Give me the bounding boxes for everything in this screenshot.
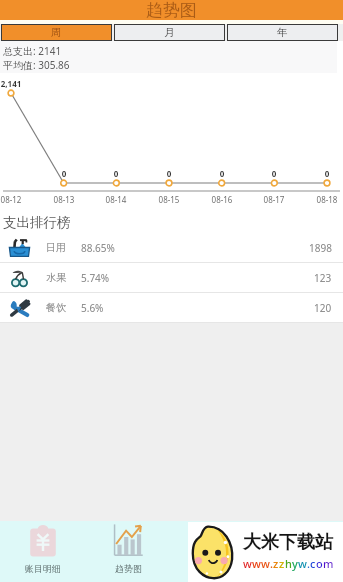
staticText: z <box>279 556 285 571</box>
staticText: 1898 <box>309 241 332 255</box>
staticText: m <box>323 556 334 571</box>
staticText: 0 <box>254 168 294 179</box>
staticText: 5.74% <box>81 271 110 285</box>
staticText: 120 <box>314 301 332 315</box>
staticText: 08-18 <box>307 194 343 205</box>
staticText: 支出排行榜 <box>3 214 71 231</box>
staticText: 周 <box>51 26 62 39</box>
staticText: o <box>316 556 323 571</box>
staticText: 08-14 <box>96 194 136 205</box>
staticText: 平均值: 305.86 <box>3 58 70 72</box>
button[interactable]: 月 <box>114 24 225 41</box>
staticText: 日用 <box>46 241 66 254</box>
button[interactable]: 餐饮 <box>0 293 343 322</box>
staticText: w <box>298 556 307 571</box>
staticText: 0 <box>149 168 189 179</box>
staticText: 08-17 <box>254 194 294 205</box>
staticText: 账目明细 <box>25 563 61 574</box>
staticText: 08-15 <box>149 194 189 205</box>
staticText: h <box>285 556 292 571</box>
staticText: 0 <box>307 168 343 179</box>
staticText: 5.6% <box>81 301 104 315</box>
staticText: 水果 <box>46 271 66 284</box>
staticText: w <box>261 556 270 571</box>
staticText: 餐饮 <box>46 301 66 314</box>
staticText: 年 <box>277 26 288 39</box>
staticText: 2,141 <box>0 78 31 89</box>
staticText: 趋势图 <box>115 563 142 574</box>
staticText: 123 <box>314 271 332 285</box>
staticText: 08-12 <box>0 194 31 205</box>
staticText: y <box>292 556 298 571</box>
staticText: 0 <box>44 168 84 179</box>
button[interactable]: 年 <box>227 24 338 41</box>
staticText: w <box>243 556 252 571</box>
staticText: c <box>310 556 316 571</box>
staticText: 0 <box>96 168 136 179</box>
staticText: 大米下载站 <box>243 531 333 554</box>
button[interactable]: 趋势图 <box>86 521 170 582</box>
staticText: 0 <box>202 168 242 179</box>
staticText: 08-13 <box>44 194 84 205</box>
staticText: . <box>270 556 273 571</box>
staticText: . <box>307 556 310 571</box>
staticText: 08-16 <box>202 194 242 205</box>
staticText: 趋势图 <box>146 0 197 20</box>
button[interactable]: 周 <box>1 24 112 41</box>
staticText: z <box>273 556 279 571</box>
button[interactable]: 账目明细 <box>0 521 86 582</box>
staticText: 月 <box>164 26 175 39</box>
button[interactable]: 日用 <box>0 233 343 262</box>
staticText: 88.65% <box>81 241 115 255</box>
staticText: 总支出: 2141 <box>3 44 62 58</box>
button[interactable]: 水果 <box>0 263 343 292</box>
staticText: w <box>252 556 261 571</box>
